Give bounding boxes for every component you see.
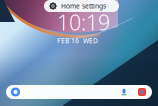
- staticText: 10:19: [57, 8, 110, 36]
- button[interactable]: [6, 85, 152, 99]
- button[interactable]: Home settings: [44, 0, 119, 12]
- staticText: FEB 16 WED: [57, 36, 98, 45]
- staticText: Home settings: [61, 2, 106, 10]
